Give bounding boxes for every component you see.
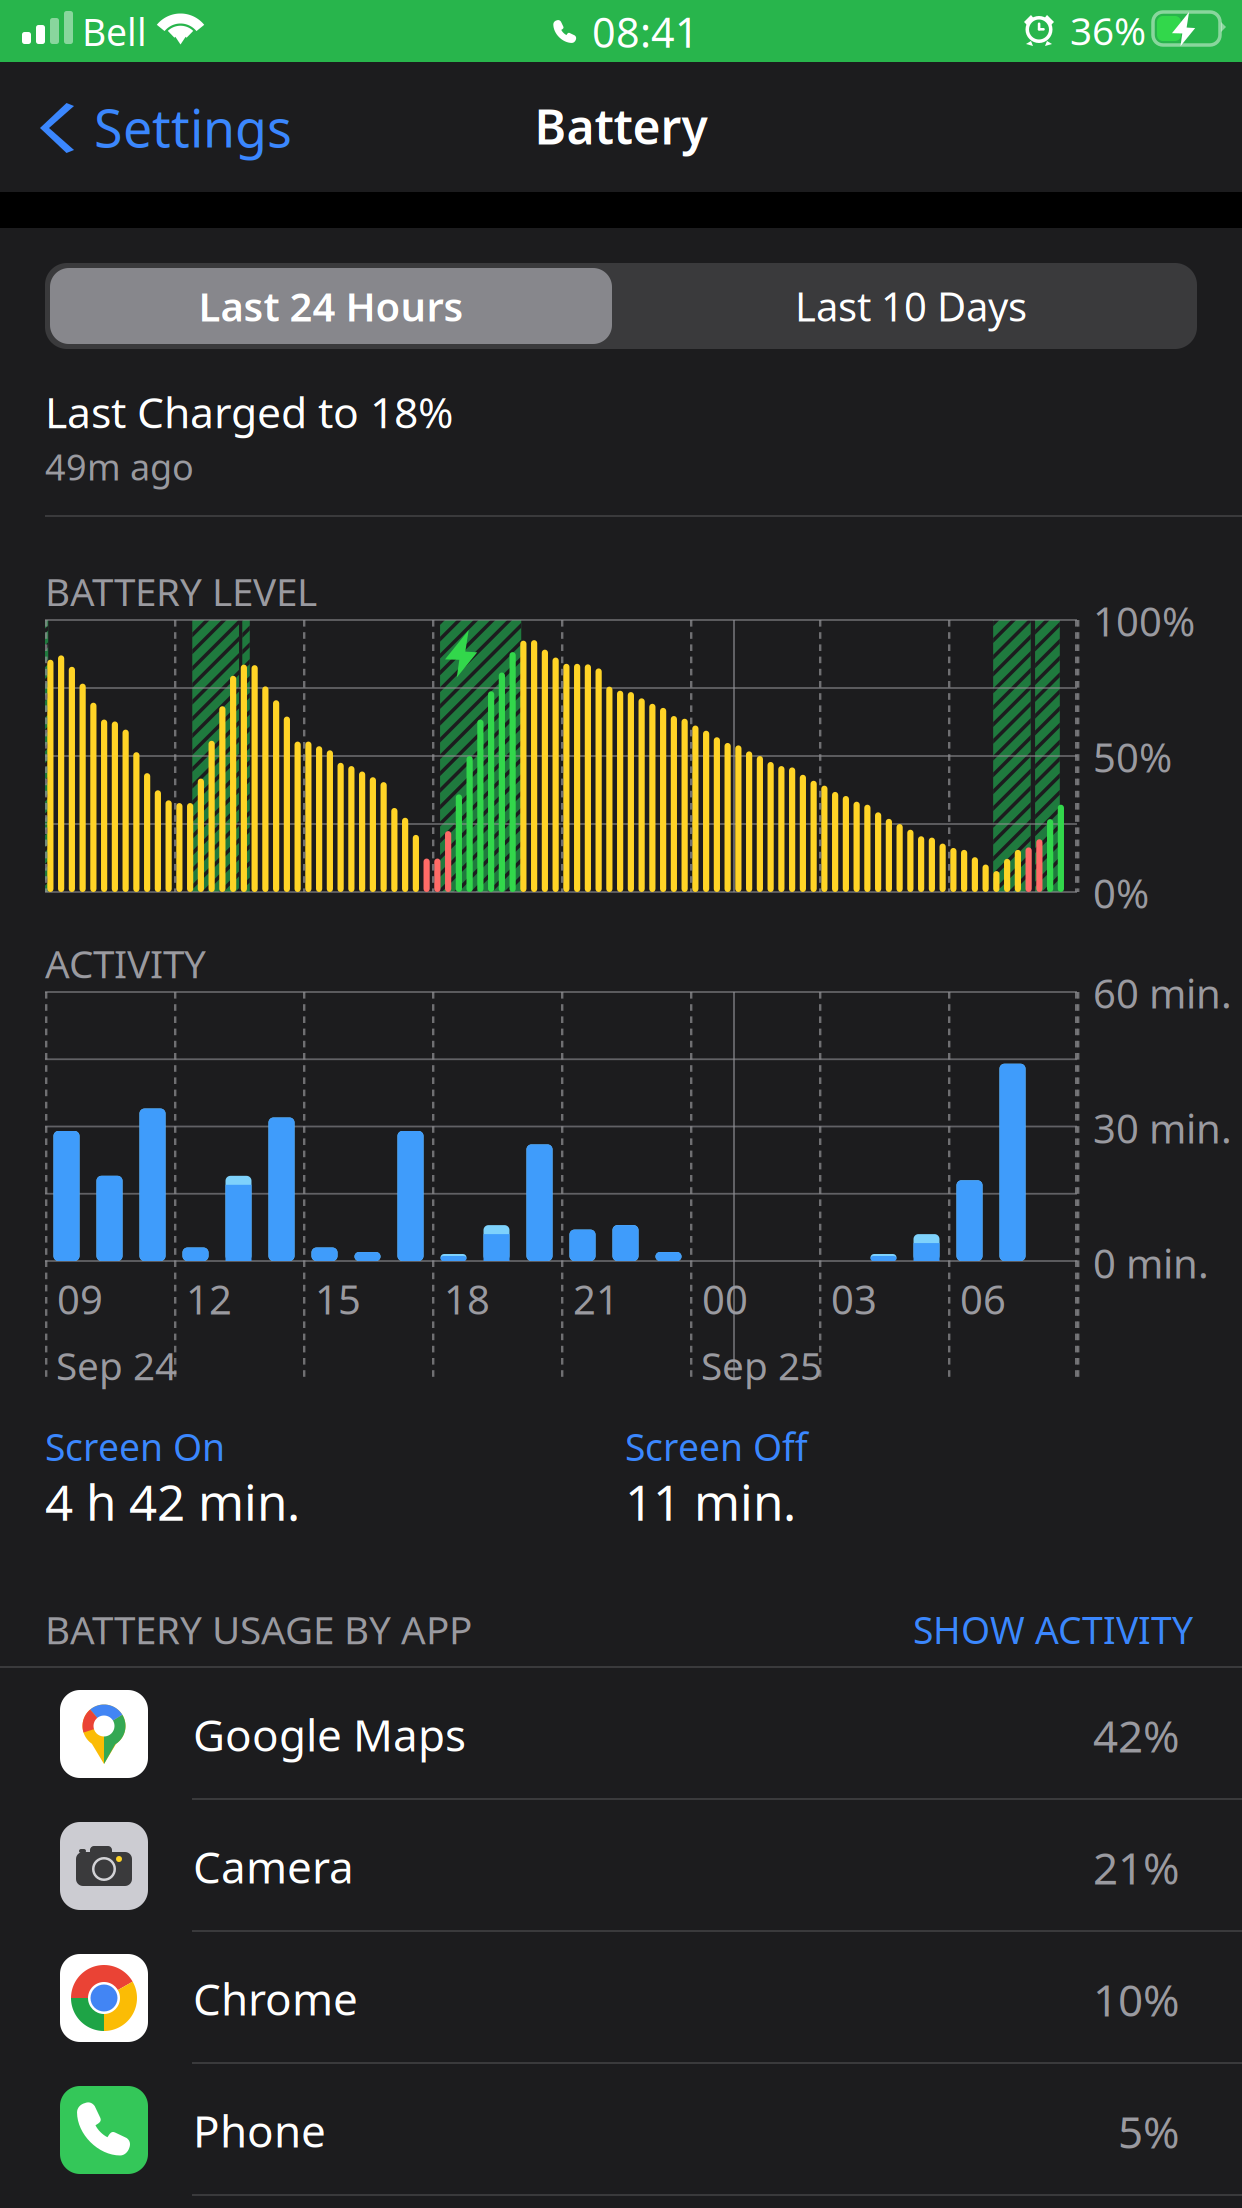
staticText: 00 (702, 1272, 748, 1325)
staticText: 50% (1093, 730, 1172, 783)
button[interactable]: Phone (0, 2064, 1242, 2196)
staticText: Sep 25 (701, 1339, 822, 1391)
staticText: Chrome (193, 1969, 358, 2028)
staticText: 100% (1093, 594, 1195, 647)
button[interactable]: Camera (0, 1800, 1242, 1932)
staticText: 36% (1070, 4, 1146, 56)
staticText: 5% (1118, 2102, 1180, 2161)
staticText: 06 (960, 1272, 1006, 1325)
staticText: Last 24 Hours (198, 279, 463, 332)
staticText: SHOW ACTIVITY (913, 1605, 1193, 1654)
button[interactable]: Settings (0, 62, 310, 192)
staticText: 03 (831, 1272, 877, 1325)
staticText: 09 (57, 1272, 103, 1325)
staticText: Bell (82, 7, 147, 56)
staticText: 21 (573, 1272, 619, 1325)
button[interactable]: Google Maps (0, 1668, 1242, 1800)
staticText: Last 10 Days (795, 279, 1027, 332)
staticText: 08:41 (592, 4, 699, 59)
staticText: Screen On (45, 1422, 225, 1471)
staticText: 18 (444, 1272, 490, 1325)
staticText: 60 min. (1093, 966, 1232, 1019)
staticText: 0 min. (1093, 1236, 1209, 1289)
staticText: Camera (193, 1837, 354, 1896)
staticText: Last Charged to 18% (45, 383, 453, 440)
button[interactable]: Last 10 Days (45, 263, 1197, 349)
staticText: 42% (1093, 1706, 1180, 1765)
staticText: Battery (534, 94, 707, 158)
staticText: Google Maps (193, 1705, 466, 1764)
staticText: 49m ago (45, 443, 194, 490)
staticText: 10% (1093, 1970, 1180, 2029)
staticText: 30 min. (1093, 1101, 1232, 1154)
staticText: BATTERY USAGE BY APP (45, 1603, 472, 1655)
staticText: 15 (315, 1272, 361, 1325)
button[interactable]: Chrome (0, 1932, 1242, 2064)
staticText: 21% (1093, 1838, 1180, 1897)
staticText: 12 (186, 1272, 232, 1325)
button[interactable]: SHOW ACTIVITY (0, 0, 553, 45)
staticText: 0% (1093, 866, 1149, 919)
staticText: Screen Off (625, 1422, 808, 1471)
staticText: 4 h 42 min. (45, 1469, 300, 1534)
button[interactable]: Last 24 Hours (45, 263, 617, 349)
staticText: BATTERY LEVEL (45, 565, 317, 617)
staticText: Sep 24 (56, 1339, 177, 1391)
staticText: Phone (193, 2101, 326, 2160)
staticText: Settings (94, 93, 292, 162)
staticText: ACTIVITY (45, 937, 206, 989)
staticText: 11 min. (625, 1469, 796, 1534)
